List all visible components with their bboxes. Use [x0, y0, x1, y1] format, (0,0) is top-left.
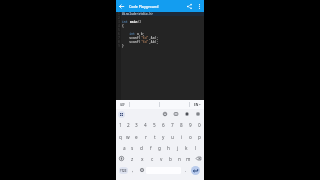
button[interactable]: f [146, 142, 155, 153]
button[interactable]: More options [195, 0, 204, 12]
button[interactable]: j [173, 142, 182, 153]
staticText: y [162, 134, 165, 140]
staticText: EN • [194, 103, 201, 107]
staticText: x [141, 156, 144, 162]
button[interactable]: b [166, 153, 175, 164]
staticText: m [186, 156, 191, 162]
staticText: 6 [118, 32, 120, 36]
button[interactable]: r [141, 131, 150, 142]
button[interactable]: y [159, 131, 168, 142]
button[interactable]: Enter [191, 166, 200, 175]
staticText: 2 [127, 122, 130, 128]
staticText: 9 [118, 44, 120, 48]
staticText: { [122, 24, 124, 28]
button[interactable]: w [124, 131, 132, 142]
button[interactable]: x [137, 153, 147, 164]
staticText: 6 [162, 122, 165, 128]
button[interactable]: t [150, 131, 159, 142]
button[interactable]: q [116, 131, 124, 142]
button[interactable]: 2 [124, 119, 132, 131]
button[interactable]: EN • [190, 100, 204, 109]
button[interactable]: 0 [195, 119, 204, 131]
button[interactable]: 3 [132, 119, 141, 131]
button[interactable]: ?123 [119, 167, 128, 174]
button[interactable]: 6 [159, 119, 168, 131]
staticText: b [169, 156, 172, 162]
button[interactable]: a [120, 142, 128, 153]
button[interactable]: GIF search [170, 109, 181, 119]
staticText: 8 [118, 40, 120, 44]
button[interactable]: Back [116, 0, 127, 12]
staticText: g [158, 145, 161, 151]
button[interactable]: o [186, 131, 195, 142]
staticText: "%d" [141, 40, 149, 44]
staticText: 5 [118, 28, 120, 32]
staticText: 9 [189, 122, 192, 128]
button[interactable]: . [181, 164, 191, 176]
staticText: 2 [118, 16, 120, 20]
staticText: s [131, 145, 134, 151]
staticText: () [138, 20, 142, 24]
staticText: c [151, 156, 154, 162]
button[interactable]: p [195, 131, 204, 142]
button[interactable]: 5 [150, 119, 159, 131]
staticText: w [126, 134, 130, 140]
button[interactable]: Settings [192, 109, 203, 119]
staticText: scanf( [122, 36, 141, 40]
staticText: 7 [118, 36, 120, 40]
staticText: o [189, 134, 192, 140]
staticText: main [130, 20, 138, 24]
button[interactable]: Keyboard options [118, 111, 125, 118]
button[interactable]: c [147, 153, 157, 164]
staticText: 5 [153, 122, 156, 128]
staticText: ,&a); [149, 36, 159, 40]
button[interactable]: Shift [116, 153, 127, 164]
button[interactable]: g [155, 142, 164, 153]
staticText: int [122, 20, 130, 24]
button[interactable]: 8 [177, 119, 186, 131]
staticText: r [145, 134, 147, 140]
button[interactable]: h [164, 142, 173, 153]
staticText: "%d" [141, 36, 149, 40]
button[interactable]: v [157, 153, 166, 164]
staticText: . [185, 167, 187, 173]
button[interactable]: d [137, 142, 146, 153]
button[interactable]: Stickers [159, 109, 170, 119]
button[interactable]: e [132, 131, 141, 142]
button[interactable]: Backspace [193, 153, 204, 164]
staticText: l [195, 145, 197, 151]
button[interactable]: 9 [186, 119, 195, 131]
staticText: ?123 [120, 169, 127, 173]
staticText: v [160, 156, 163, 162]
button[interactable]: 7 [168, 119, 177, 131]
button[interactable]: m [184, 153, 193, 164]
staticText: scanf( [122, 40, 141, 44]
staticText: k [185, 145, 188, 151]
button[interactable]: i [177, 131, 186, 142]
staticText: ,&b); [149, 40, 159, 44]
button[interactable]: s [128, 142, 137, 153]
button[interactable]: k [182, 142, 191, 153]
button[interactable]: n [175, 153, 184, 164]
button[interactable]: , [128, 164, 137, 176]
staticText: i [181, 134, 183, 140]
button[interactable]: Share [184, 0, 195, 12]
button[interactable]: Clipboard [181, 109, 192, 119]
button[interactable]: Emoji [137, 164, 146, 176]
staticText: 4 [144, 122, 147, 128]
staticText: a [123, 145, 126, 151]
button[interactable]: GIF [116, 100, 129, 109]
staticText: n [178, 156, 181, 162]
staticText: 8 [180, 122, 183, 128]
button[interactable]: z [127, 153, 137, 164]
button[interactable]: 4 [141, 119, 150, 131]
button[interactable]: 1 [116, 119, 124, 131]
button[interactable]: u [168, 131, 177, 142]
staticText: 3 [118, 20, 120, 24]
staticText: t [154, 134, 156, 140]
button[interactable]: l [191, 142, 200, 153]
staticText: 7 [171, 122, 174, 128]
